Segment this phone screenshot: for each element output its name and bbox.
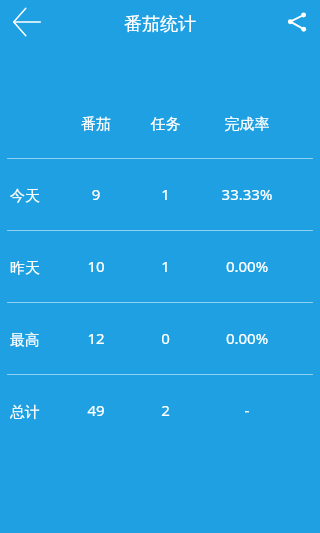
staticText: 0	[128, 328, 203, 348]
staticText: 2	[128, 400, 203, 420]
staticText: 昨天	[10, 259, 40, 278]
staticText: 12	[64, 328, 128, 348]
staticText: 番茄	[64, 115, 128, 134]
staticText: 总计	[10, 403, 40, 422]
staticText: 0.00%	[203, 256, 291, 276]
button[interactable]: Back	[7, 2, 47, 42]
staticText: 33.33%	[203, 184, 291, 204]
button[interactable]: Share	[277, 2, 317, 42]
staticText: 10	[64, 256, 128, 276]
staticText: 任务	[128, 115, 203, 134]
button[interactable]: 今天	[0, 159, 320, 230]
staticText: 完成率	[203, 115, 291, 134]
staticText: 9	[64, 184, 128, 204]
button[interactable]: 最高	[0, 303, 320, 374]
button[interactable]: 总计	[0, 375, 320, 446]
staticText: 今天	[10, 187, 40, 206]
staticText: 番茄统计	[124, 13, 196, 36]
staticText: 0.00%	[203, 328, 291, 348]
staticText: 1	[128, 184, 203, 204]
staticText: 49	[64, 400, 128, 420]
staticText: 最高	[10, 331, 40, 350]
staticText: -	[203, 400, 291, 420]
staticText: 1	[128, 256, 203, 276]
button[interactable]: 昨天	[0, 231, 320, 302]
